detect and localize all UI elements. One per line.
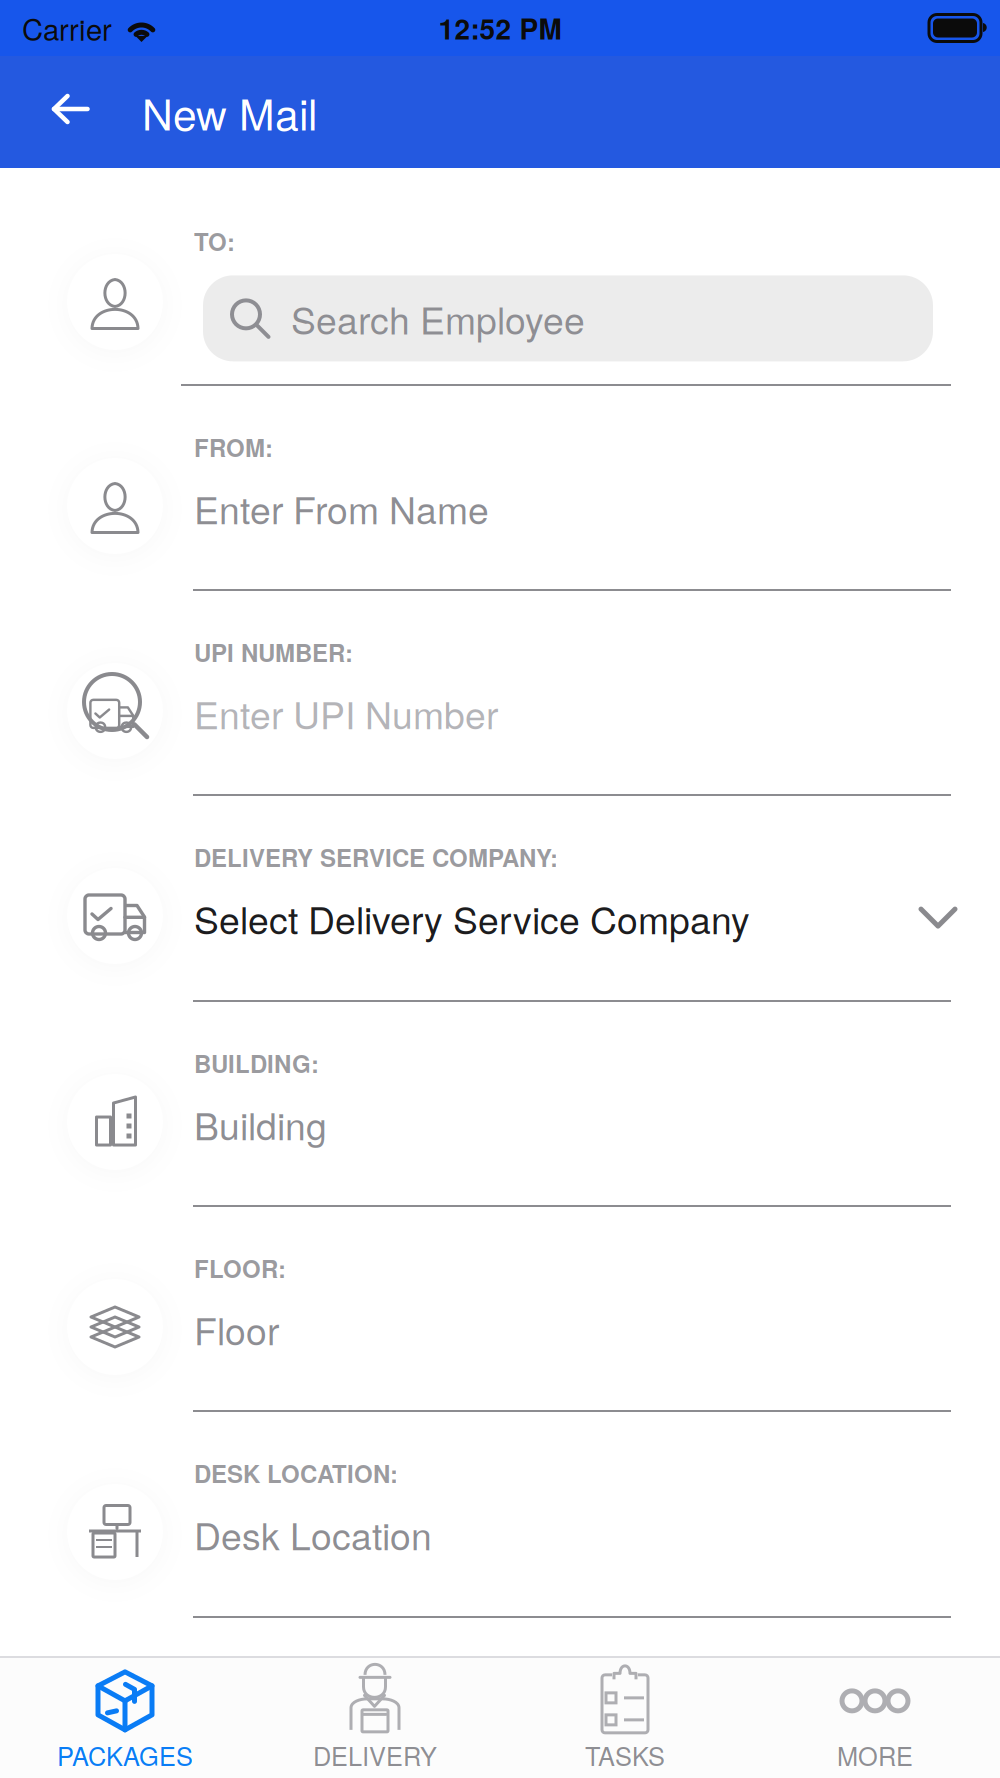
- button[interactable]: MORE: [750, 1658, 1000, 1778]
- staticText: Building: [194, 1097, 327, 1151]
- staticText: Carrier: [22, 7, 112, 49]
- button[interactable]: TASKS: [500, 1658, 750, 1778]
- staticText: BUILDING:: [194, 1046, 319, 1080]
- button[interactable]: PACKAGES: [0, 1658, 250, 1778]
- staticText: DELIVERY: [313, 1737, 437, 1773]
- staticText: Search Employee: [291, 292, 585, 345]
- staticText: MORE: [837, 1737, 913, 1773]
- staticText: Enter From Name: [194, 481, 489, 535]
- staticText: PACKAGES: [57, 1737, 193, 1773]
- staticText: FROM:: [194, 430, 273, 464]
- staticText: Floor: [194, 1302, 279, 1356]
- staticText: DELIVERY SERVICE COMPANY:: [194, 840, 558, 874]
- button[interactable]: DELIVERY: [250, 1658, 500, 1778]
- button[interactable]: Back: [25, 56, 142, 168]
- staticText: Select Delivery Service Company: [194, 891, 750, 945]
- staticText: Desk Location: [194, 1507, 432, 1561]
- staticText: UPI NUMBER:: [194, 635, 353, 669]
- staticText: Enter UPI Number: [194, 686, 498, 740]
- staticText: 12:52 PM: [438, 8, 561, 48]
- staticText: FLOOR:: [194, 1251, 286, 1285]
- staticText: TASKS: [585, 1737, 665, 1773]
- staticText: DESK LOCATION:: [194, 1456, 398, 1490]
- staticText: New Mail: [142, 81, 317, 143]
- staticText: TO:: [194, 224, 235, 258]
